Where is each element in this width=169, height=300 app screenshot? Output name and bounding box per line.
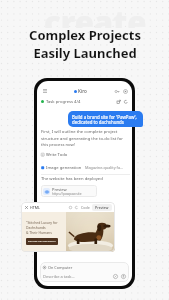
staticText: Image generation	[46, 165, 82, 171]
staticText: Magazine-quality fa...	[85, 165, 124, 170]
button[interactable]: EXPLORE THE COLLECTION	[26, 238, 58, 245]
button[interactable]: Menu	[41, 87, 48, 94]
button[interactable]: Preview	[92, 204, 112, 211]
button[interactable]: Build a brand site for 'PawPaw', dedicat…	[68, 111, 143, 127]
button[interactable]: Send	[120, 273, 126, 279]
staticText: Write Todo	[46, 152, 68, 158]
staticText: Describe a task...	[43, 274, 75, 279]
staticText: Preview	[52, 187, 67, 192]
button[interactable]: Preview	[41, 185, 97, 197]
button[interactable]: Attach	[112, 273, 118, 279]
staticText: First, I will outline the complete proje…	[41, 129, 123, 147]
staticText: Build a brand site for 'PawPaw', dedicat…	[72, 114, 137, 126]
staticText: The website has been deployed	[41, 176, 103, 182]
staticText: https://pawpaw.site	[52, 192, 82, 196]
button[interactable]: Key	[114, 88, 120, 94]
button[interactable]: Refresh	[123, 99, 128, 104]
staticText: Kiro	[78, 88, 87, 94]
staticText: create	[44, 1, 147, 28]
staticText: On Computer	[48, 265, 73, 270]
staticText: HTML	[30, 205, 40, 210]
staticText: "Stitched Luxury for Dachshunds & Their …	[26, 220, 58, 235]
staticText: Easily Launched	[33, 44, 137, 62]
staticText: Complex Projects	[29, 26, 141, 44]
staticText: Code	[81, 205, 90, 210]
button[interactable]: Expand	[116, 99, 121, 104]
staticText: Preview	[95, 205, 109, 210]
staticText: Task progress 4/4	[46, 99, 81, 105]
staticText: EXPLORE THE COLLECTION	[28, 240, 56, 243]
button[interactable]: Close	[24, 205, 29, 210]
button[interactable]: Profile	[122, 88, 128, 94]
